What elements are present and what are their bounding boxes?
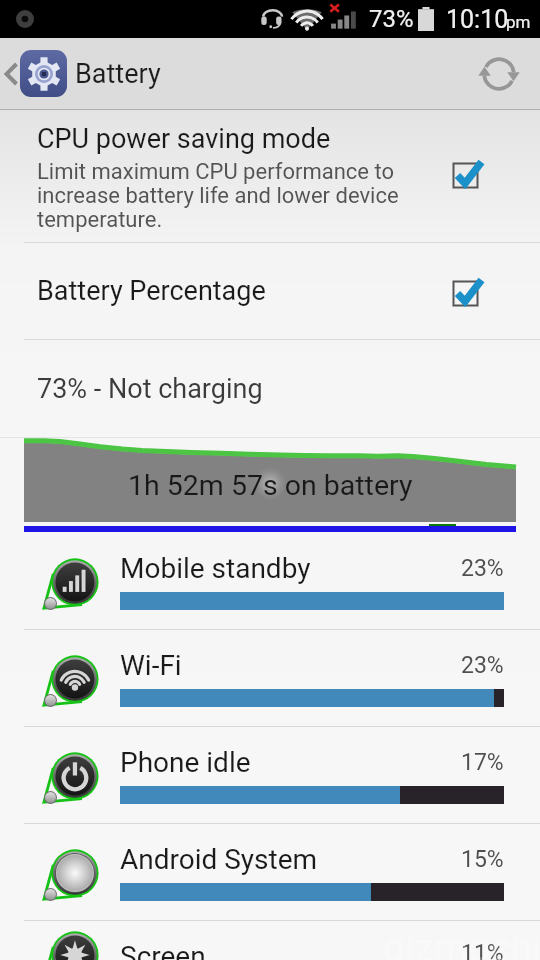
staticText: 11%	[461, 940, 504, 960]
staticText: pm	[506, 12, 531, 32]
staticText: Screen	[120, 940, 206, 960]
staticText: Mobile standby	[120, 552, 311, 585]
button[interactable]: Mobile standby	[0, 533, 540, 629]
staticText: Wi-Fi	[120, 649, 182, 682]
staticText: 23%	[461, 555, 504, 582]
button[interactable]: Refresh	[469, 44, 529, 104]
button[interactable]: Screen	[0, 921, 540, 960]
staticText: Phone idle	[120, 746, 251, 779]
staticText: gizmochina	[383, 925, 540, 960]
staticText: Limit maximum CPU performance to increas…	[37, 159, 399, 232]
staticText: Android System	[120, 843, 318, 876]
button[interactable]: Battery Percentage	[0, 243, 540, 339]
staticText: CPU power saving mode	[37, 123, 331, 155]
button[interactable]: Back	[0, 38, 540, 109]
other: Back	[6, 63, 17, 85]
staticText: 23%	[461, 652, 504, 679]
staticText: 73%	[369, 5, 414, 33]
staticText: Battery	[75, 58, 161, 90]
staticText: 15%	[461, 846, 504, 873]
button[interactable]: Phone idle	[0, 727, 540, 823]
staticText: Battery Percentage	[37, 275, 266, 307]
button[interactable]: Android System	[0, 824, 540, 920]
button[interactable]: Wi-Fi	[0, 630, 540, 726]
staticText: 73% - Not charging	[37, 373, 263, 405]
staticText: 1h 52m 57s on battery	[128, 469, 413, 502]
staticText: 17%	[461, 749, 504, 776]
staticText: 10:10	[446, 5, 509, 34]
button[interactable]: CPU power saving mode	[0, 110, 540, 242]
